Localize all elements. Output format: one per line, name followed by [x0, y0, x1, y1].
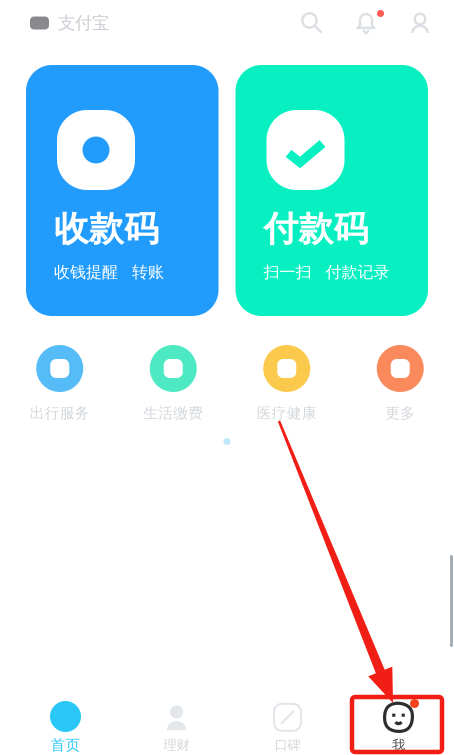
button[interactable]: 口碑	[232, 702, 343, 753]
staticText: 出行服务	[30, 404, 90, 422]
staticText: 收款码	[54, 208, 159, 250]
button[interactable]: 支付宝	[30, 4, 109, 42]
staticText: 首页	[50, 736, 80, 754]
button[interactable]: Notifications	[339, 1, 393, 45]
button[interactable]: 医疗健康	[230, 345, 343, 422]
staticText: 我	[392, 737, 405, 753]
staticText: 医疗健康	[257, 404, 317, 422]
staticText: 理财	[163, 737, 189, 753]
button[interactable]: Search	[285, 1, 339, 45]
staticText: 口碑	[274, 737, 300, 753]
button[interactable]: 理财	[121, 702, 232, 753]
button[interactable]: 收款码	[26, 65, 218, 316]
button[interactable]: 生活缴费	[116, 345, 230, 422]
staticText: 收钱提醒	[54, 262, 118, 282]
button[interactable]: 我	[343, 702, 454, 753]
staticText: 支付宝	[58, 12, 109, 34]
button[interactable]: 出行服务	[3, 345, 116, 422]
button[interactable]: 首页	[10, 701, 121, 754]
button[interactable]: Profile	[393, 1, 447, 45]
staticText: 付款码	[263, 208, 368, 250]
staticText: 付款记录	[325, 262, 389, 282]
staticText: 更多	[385, 404, 415, 422]
staticText: 扫一扫	[263, 262, 311, 282]
staticText: 生活缴费	[143, 404, 203, 422]
button[interactable]: 付款码	[235, 65, 428, 316]
staticText: 转账	[132, 262, 164, 282]
button[interactable]: 更多	[343, 345, 454, 422]
